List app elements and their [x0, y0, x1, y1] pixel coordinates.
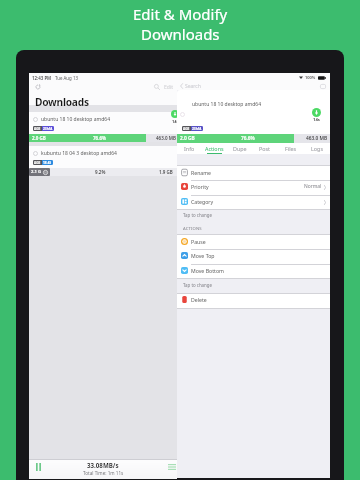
staticText: Logs	[311, 145, 323, 152]
staticText: AGE	[34, 127, 41, 131]
button[interactable]: Dupe	[227, 143, 252, 154]
button[interactable]	[29, 146, 177, 170]
button[interactable]: Info	[177, 143, 202, 154]
staticText: ACTIONS	[183, 226, 202, 232]
button[interactable]: Rename	[177, 166, 330, 181]
button[interactable]: Downloading	[171, 110, 179, 118]
staticText: Move Top	[191, 252, 215, 259]
staticText: 2.0 GB	[180, 135, 195, 142]
staticText: Normal	[304, 183, 322, 190]
button[interactable]	[29, 112, 177, 136]
staticText: 23h54	[43, 127, 53, 131]
staticText: Dupe	[233, 145, 247, 152]
staticText: Files	[285, 145, 297, 152]
staticText: Tap to change	[183, 212, 212, 218]
staticText: AGE	[183, 127, 190, 131]
button[interactable]: Options	[320, 84, 326, 89]
staticText: Delete	[191, 296, 207, 303]
button[interactable]: Search	[180, 82, 201, 90]
button[interactable]: Category	[177, 195, 330, 210]
button[interactable]: Move Top	[177, 249, 330, 264]
button[interactable]: Priority	[177, 180, 330, 195]
button[interactable]: Delete	[177, 293, 330, 308]
staticText: 14s	[313, 117, 320, 123]
staticText: Category	[191, 198, 214, 205]
staticText: Tue Aug 13	[55, 75, 78, 81]
staticText: 14s	[172, 119, 179, 124]
button[interactable]: Post	[252, 143, 278, 154]
staticText: 2.0 GB	[32, 135, 46, 141]
staticText: Actions	[205, 145, 224, 152]
staticText: Post	[259, 145, 271, 152]
staticText: Rename	[191, 169, 212, 176]
staticText: ubuntu 18 10 desktop amd64	[192, 101, 262, 108]
staticText: Tap to change	[183, 282, 212, 288]
button[interactable]: Files	[278, 143, 304, 154]
button[interactable]: Actions	[202, 143, 227, 154]
button[interactable]: Refresh	[35, 84, 41, 90]
button[interactable]: Downloading	[312, 108, 321, 117]
staticText: Downloads	[141, 24, 220, 44]
staticText: 18 4S	[43, 161, 52, 165]
staticText: Total Time: 1m 11s	[83, 470, 124, 476]
staticText: AGE	[34, 161, 41, 165]
staticText: Edit	[164, 84, 173, 91]
staticText: 1.9 GB	[159, 169, 173, 175]
staticText: 76.6%	[241, 135, 255, 142]
button[interactable]: Pause	[177, 235, 330, 250]
staticText: 2.1 G	[31, 169, 42, 175]
staticText: 463.0 MB	[156, 135, 176, 141]
button[interactable]: Logs	[304, 143, 330, 154]
staticText: Priority	[191, 183, 209, 190]
staticText: Edit & Modify	[133, 4, 228, 24]
staticText: ubuntu 18 10 desktop amd64	[41, 116, 111, 123]
button[interactable]: Sort	[168, 464, 176, 470]
button[interactable]: Edit	[163, 83, 174, 92]
staticText: 463.0 MB	[306, 135, 328, 142]
staticText: kubuntu 18 04 3 desktop amd64	[41, 150, 117, 157]
staticText: Downloads	[35, 95, 89, 109]
button[interactable]: Move Bottom	[177, 264, 330, 279]
staticText: 23h54	[192, 127, 202, 131]
staticText: Info	[184, 145, 195, 152]
staticText: Search	[185, 83, 201, 90]
staticText: Move Bottom	[191, 267, 224, 274]
staticText: 100%	[305, 75, 316, 80]
staticText: 12:43 PM	[32, 75, 52, 81]
staticText: 9.2%	[95, 169, 106, 175]
button[interactable]: Pause all	[36, 463, 41, 471]
staticText: 76.6%	[93, 135, 106, 141]
button[interactable]: Search	[154, 84, 160, 90]
staticText: Pause	[191, 238, 206, 245]
staticText: 33.08MB/s	[87, 461, 119, 469]
